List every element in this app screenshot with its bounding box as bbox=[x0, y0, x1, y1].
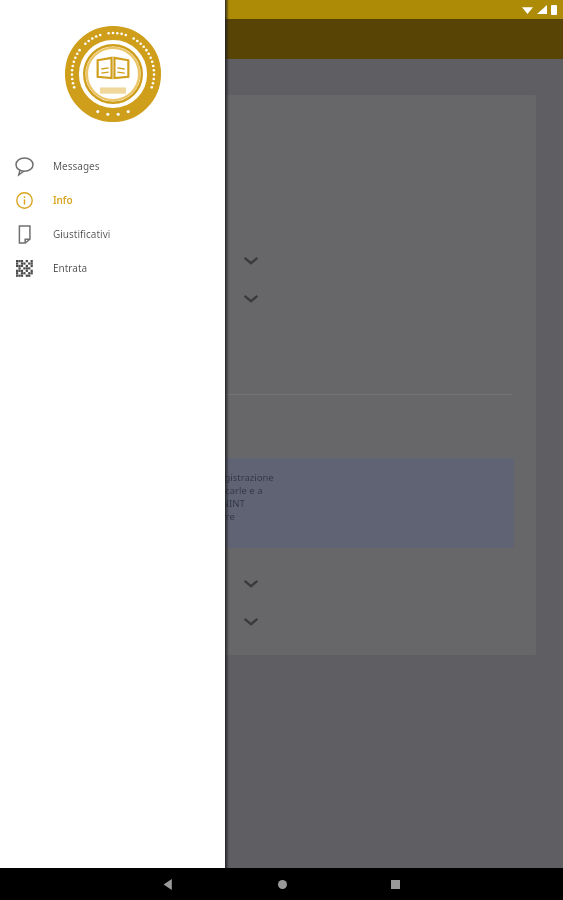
button[interactable]: Recent apps bbox=[375, 868, 415, 900]
button[interactable]: Expand bbox=[17, 565, 280, 601]
staticText: delle sue entrate/uscite; La invitiamo a… bbox=[29, 484, 263, 497]
button[interactable]: Giustificativi bbox=[0, 217, 225, 251]
staticText: Il sistema ha rilevato delle anomalie ne… bbox=[29, 471, 274, 484]
button[interactable]: Entrata bbox=[0, 251, 225, 285]
button[interactable]: Messages bbox=[0, 149, 225, 183]
staticText: Giustificativi bbox=[53, 227, 111, 241]
button[interactable]: Info bbox=[0, 183, 225, 217]
button[interactable]: Il sistema ha rilevato delle anomalie ne… bbox=[17, 458, 514, 548]
button[interactable]: Expand bbox=[17, 603, 280, 639]
staticText: Entrata bbox=[53, 261, 88, 275]
staticText: segnalarlo immediatamente al personale U… bbox=[29, 497, 245, 510]
staticText: Le ricordiamo che le anomalie possono es… bbox=[29, 510, 235, 523]
staticText: Messages bbox=[53, 159, 100, 173]
button[interactable]: Back bbox=[148, 868, 188, 900]
button[interactable]: Home bbox=[262, 868, 302, 900]
button[interactable]: Expand bbox=[17, 280, 280, 316]
staticText: Info bbox=[53, 193, 73, 207]
button[interactable]: Expand bbox=[17, 242, 280, 278]
